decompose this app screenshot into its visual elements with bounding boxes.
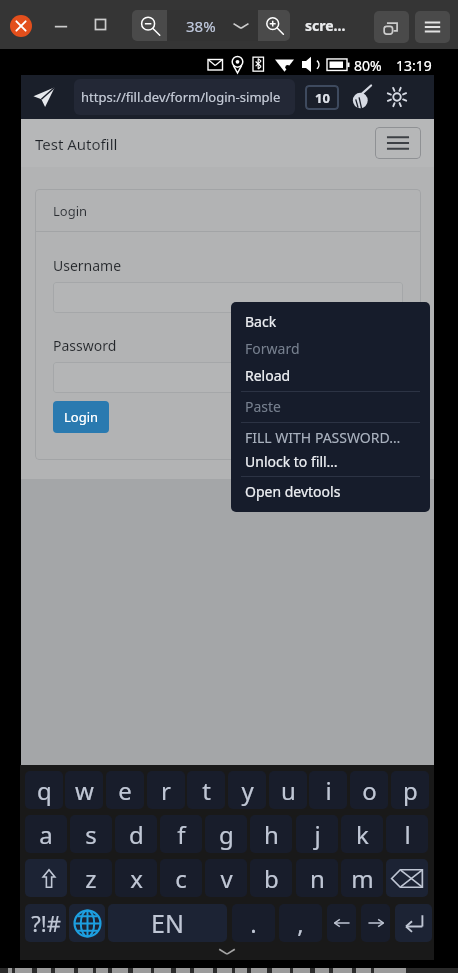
staticText: t <box>202 774 211 807</box>
button[interactable]: s <box>70 815 112 853</box>
staticText: a <box>39 818 53 851</box>
staticText: Password <box>53 336 117 355</box>
button[interactable]: i <box>309 771 347 809</box>
button[interactable]: j <box>296 815 338 853</box>
staticText: o <box>362 774 377 807</box>
button[interactable]: Restore window <box>374 11 409 43</box>
button[interactable]: , <box>279 904 322 942</box>
button[interactable]: t <box>187 771 225 809</box>
button[interactable] <box>53 362 403 393</box>
button[interactable]: g <box>205 815 247 853</box>
staticText: . <box>250 907 257 940</box>
button[interactable]: Paste <box>231 393 430 420</box>
button[interactable]: ?!# <box>25 904 66 942</box>
button[interactable]: https://fill.dev/form/login-simple <box>74 79 295 115</box>
button[interactable]: Hide keyboard <box>212 945 242 958</box>
button[interactable]: k <box>341 815 383 853</box>
button[interactable]: Brightness <box>381 80 412 114</box>
staticText: n <box>310 862 325 895</box>
staticText: Reload <box>245 366 291 385</box>
staticText: m <box>351 862 374 895</box>
button[interactable]: Arrow right <box>361 904 390 942</box>
button[interactable]: a <box>25 815 67 853</box>
button[interactable]: Arrow left <box>327 904 356 942</box>
button[interactable]: Maximize window <box>90 14 111 35</box>
button[interactable]: Zoom out <box>132 10 167 41</box>
button[interactable]: h <box>250 815 292 853</box>
button[interactable]: EN <box>108 904 227 942</box>
button[interactable]: Login <box>53 401 109 433</box>
button[interactable]: Backspace <box>386 859 428 897</box>
button[interactable]: e <box>106 771 144 809</box>
button[interactable]: Back <box>231 308 430 335</box>
staticText: r <box>161 774 171 807</box>
button[interactable]: Toggle navigation <box>375 127 421 159</box>
button[interactable]: Minimize window <box>50 13 72 35</box>
button[interactable]: r <box>147 771 185 809</box>
button[interactable]: l <box>386 815 428 853</box>
staticText: q <box>37 774 52 807</box>
staticText: Username <box>53 256 122 275</box>
staticText: , <box>297 907 304 940</box>
button[interactable]: FILL WITH PASSWORD… <box>231 424 430 451</box>
button[interactable]: b <box>250 859 292 897</box>
staticText: w <box>75 774 94 807</box>
staticText: Open devtools <box>245 482 341 501</box>
button[interactable]: o <box>350 771 388 809</box>
staticText: scre… <box>305 16 346 35</box>
button[interactable]: Reload <box>231 362 430 389</box>
button[interactable]: Change language <box>69 904 105 942</box>
button[interactable]: m <box>341 859 383 897</box>
button[interactable]: q <box>25 771 63 809</box>
button[interactable]: 38% <box>167 10 258 41</box>
staticText: j <box>314 818 321 851</box>
button[interactable]: Tor settings <box>345 80 376 114</box>
button[interactable]: Forward <box>231 335 430 362</box>
button[interactable]: Application menu <box>415 11 450 43</box>
button[interactable]: Open devtools <box>231 478 430 505</box>
staticText: e <box>118 774 132 807</box>
staticText: https://fill.dev/form/login-simple <box>81 88 281 106</box>
button[interactable]: z <box>70 859 112 897</box>
button[interactable]: . <box>232 904 275 942</box>
staticText: EN <box>151 906 184 940</box>
staticText: u <box>281 774 296 807</box>
staticText: ?!# <box>31 908 61 938</box>
button[interactable]: w <box>65 771 103 809</box>
staticText: Forward <box>245 339 300 358</box>
staticText: d <box>129 818 144 851</box>
button[interactable]: p <box>391 771 429 809</box>
staticText: Login <box>64 408 99 426</box>
staticText: h <box>264 818 279 851</box>
button[interactable]: 10 <box>305 85 339 110</box>
button[interactable] <box>53 282 403 313</box>
staticText: Paste <box>245 397 281 416</box>
button[interactable]: n <box>296 859 338 897</box>
staticText: c <box>175 862 187 895</box>
staticText: x <box>130 862 143 895</box>
button[interactable]: Shift <box>25 859 67 897</box>
button[interactable]: Zoom in <box>258 10 290 41</box>
button[interactable]: d <box>115 815 157 853</box>
staticText: Test Autofill <box>35 134 118 154</box>
staticText: Login <box>53 202 88 220</box>
staticText: 80% <box>354 56 382 75</box>
button[interactable]: Close window <box>10 15 32 37</box>
button[interactable]: Unlock to fill… <box>231 448 430 475</box>
button[interactable]: y <box>228 771 266 809</box>
staticText: k <box>356 818 369 851</box>
staticText: v <box>220 862 233 895</box>
button[interactable]: f <box>160 815 202 853</box>
button[interactable]: x <box>115 859 157 897</box>
button[interactable]: Enter <box>395 904 432 942</box>
staticText: 10 <box>315 89 330 107</box>
staticText: 38% <box>186 16 216 36</box>
button[interactable]: c <box>160 859 202 897</box>
button[interactable]: v <box>205 859 247 897</box>
staticText: p <box>403 774 418 807</box>
staticText: z <box>85 862 97 895</box>
button[interactable]: u <box>269 771 307 809</box>
staticText: i <box>325 774 332 807</box>
button[interactable]: Send page <box>26 79 62 115</box>
staticText: 13:19 <box>396 56 432 75</box>
